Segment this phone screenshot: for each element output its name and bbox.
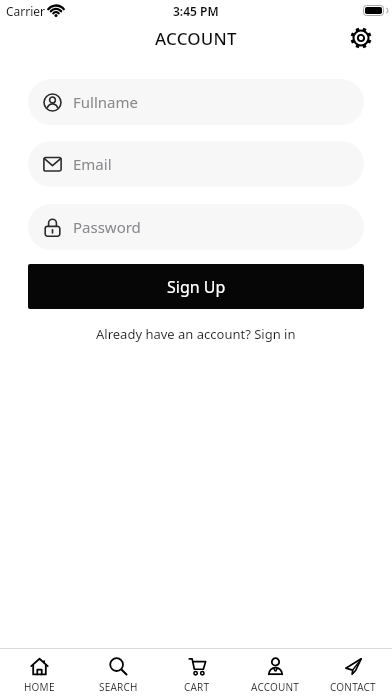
staticText: HOME bbox=[24, 680, 55, 694]
staticText: Sign Up bbox=[167, 276, 226, 298]
staticText: CONTACT bbox=[330, 680, 376, 694]
staticText: SEARCH bbox=[99, 680, 138, 694]
button[interactable]: Sign Up bbox=[28, 264, 364, 309]
button[interactable]: Email bbox=[28, 141, 364, 187]
button[interactable] bbox=[349, 26, 373, 50]
button[interactable]: HOME bbox=[0, 649, 79, 696]
button[interactable]: Fullname bbox=[28, 79, 364, 125]
button[interactable]: SEARCH bbox=[79, 649, 158, 696]
staticText: Email bbox=[73, 154, 112, 174]
staticText: Fullname bbox=[73, 92, 138, 112]
button[interactable]: CONTACT bbox=[314, 649, 392, 696]
button[interactable]: CART bbox=[158, 649, 236, 696]
staticText: Carrier bbox=[6, 3, 46, 19]
staticText: Already have an account? Sign in bbox=[96, 325, 296, 343]
staticText: Password bbox=[73, 217, 141, 237]
staticText: CART bbox=[184, 680, 210, 694]
button[interactable]: Password bbox=[28, 204, 364, 250]
button[interactable]: Already have an account? Sign in bbox=[0, 325, 392, 343]
staticText: 3:45 PM bbox=[173, 3, 219, 19]
staticText: ACCOUNT bbox=[251, 680, 300, 694]
button[interactable]: ACCOUNT bbox=[236, 649, 314, 696]
staticText: ACCOUNT bbox=[155, 27, 237, 50]
